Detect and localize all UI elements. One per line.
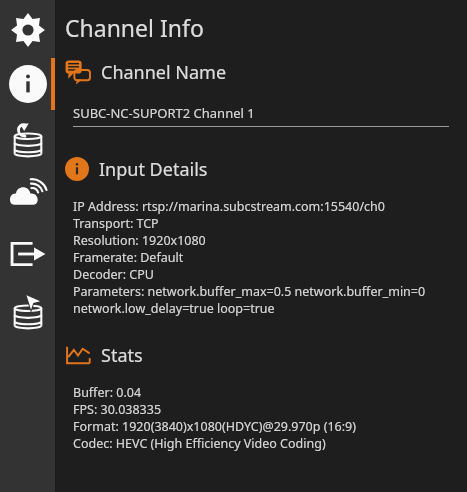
- staticText: Channel Info: [65, 12, 204, 43]
- staticText: Buffer: 0.04: [73, 384, 142, 401]
- staticText: Decoder: CPU: [73, 266, 154, 283]
- staticText: Stats: [101, 343, 143, 368]
- staticText: Format: 1920(3840)x1080(HDYC)@29.970p (1…: [73, 418, 357, 435]
- button[interactable]: Settings: [0, 4, 55, 56]
- staticText: Input Details: [99, 157, 208, 182]
- button[interactable]: Export: [0, 228, 55, 280]
- button[interactable]: SUBC-NC-SUPORT2 Channel 1: [73, 104, 449, 127]
- button[interactable]: Cloud streaming: [0, 170, 55, 222]
- staticText: Parameters: network.buffer_max=0.5 netwo…: [73, 283, 426, 300]
- staticText: Resolution: 1920x1080: [73, 232, 206, 249]
- staticText: IP Address: rtsp://marina.subcstream.com…: [73, 198, 385, 215]
- staticText: Framerate: Default: [73, 249, 184, 266]
- button[interactable]: Channel Info: [0, 58, 55, 110]
- staticText: network.low_delay=true loop=true: [73, 300, 275, 317]
- button[interactable]: Load database: [0, 114, 55, 166]
- staticText: Channel Name: [101, 60, 227, 85]
- button[interactable]: Select database: [0, 286, 55, 338]
- staticText: Codec: HEVC (High Efficiency Video Codin…: [73, 435, 326, 452]
- staticText: SUBC-NC-SUPORT2 Channel 1: [73, 104, 255, 122]
- staticText: Transport: TCP: [73, 215, 159, 232]
- staticText: FPS: 30.038335: [73, 401, 162, 418]
